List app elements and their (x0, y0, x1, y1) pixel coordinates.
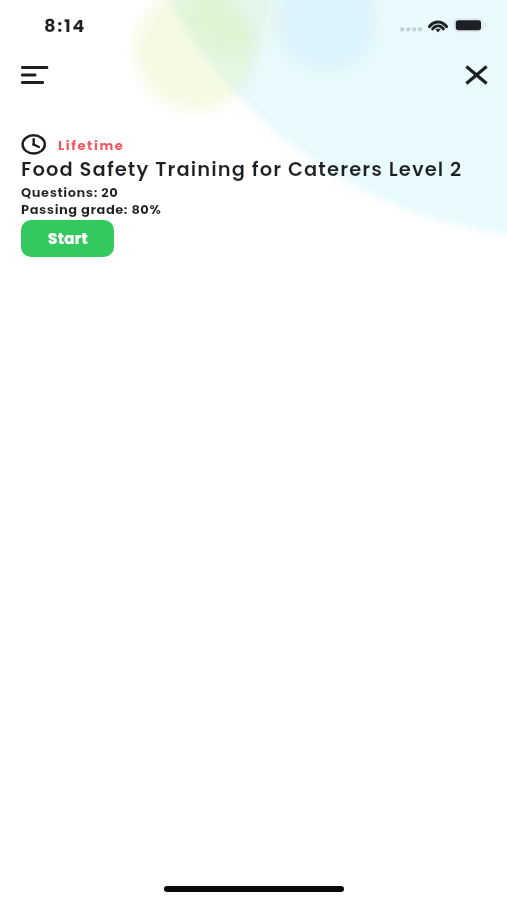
staticText: Lifetime (58, 136, 125, 154)
staticText: 8:14 (44, 13, 87, 38)
staticText: Questions: 20 (21, 183, 119, 201)
button[interactable]: Start (21, 220, 114, 257)
staticText: Start (48, 228, 88, 249)
staticText: Food Safety Training for Caterers Level … (21, 156, 463, 183)
button[interactable]: Close (454, 53, 498, 97)
button[interactable]: Menu (13, 53, 57, 97)
staticText: Passing grade: 80% (21, 200, 162, 218)
